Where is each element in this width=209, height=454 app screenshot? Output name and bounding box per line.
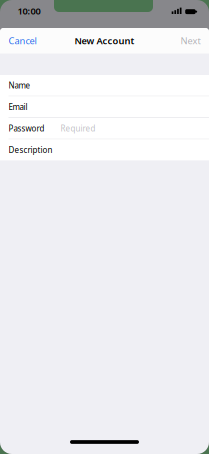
staticText: Description — [8, 144, 52, 155]
staticText: Password — [8, 123, 44, 134]
button[interactable]: Next — [180, 35, 200, 47]
button[interactable]: Name — [0, 75, 209, 96]
staticText: Required — [60, 123, 95, 134]
button[interactable]: Description — [0, 139, 209, 160]
staticText: Next — [180, 35, 200, 47]
staticText: Name — [8, 80, 30, 91]
button[interactable]: Password — [0, 118, 209, 139]
staticText: New Account — [74, 35, 134, 47]
staticText: Email — [8, 101, 27, 112]
staticText: 10:00 — [17, 5, 40, 17]
staticText: Cancel — [8, 35, 36, 47]
button[interactable]: Email — [0, 96, 209, 117]
button[interactable]: Cancel — [8, 35, 36, 47]
